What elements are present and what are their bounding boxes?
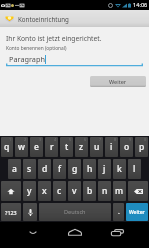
staticText: x <box>42 185 47 197</box>
staticText: t <box>65 141 69 153</box>
button[interactable]: e <box>30 137 43 157</box>
button[interactable]: Backspace <box>128 181 148 201</box>
button[interactable]: Weiter <box>90 76 146 87</box>
button[interactable]: f <box>53 159 66 179</box>
staticText: . <box>118 207 120 217</box>
staticText: 2 <box>24 137 27 142</box>
button[interactable]: Voice input <box>23 203 37 221</box>
staticText: p <box>139 141 145 153</box>
button[interactable]: Weiter <box>126 203 148 221</box>
button[interactable]: b <box>83 181 96 201</box>
staticText: e <box>34 141 39 153</box>
button[interactable]: m <box>113 181 126 201</box>
button[interactable]: r <box>45 137 58 157</box>
staticText: 5 <box>69 137 72 142</box>
button[interactable]: d <box>38 159 51 179</box>
staticText: Deutsch <box>64 208 86 216</box>
staticText: Kontoeinrichtung <box>18 15 69 23</box>
staticText: n <box>102 185 108 197</box>
button[interactable]: ?123 <box>1 203 21 221</box>
button[interactable]: q <box>1 137 13 157</box>
staticText: w <box>18 141 25 153</box>
staticText: l <box>133 163 136 175</box>
button[interactable]: n <box>98 181 111 201</box>
button[interactable]: a <box>8 159 21 179</box>
staticText: i <box>110 141 113 153</box>
staticText: z <box>79 141 84 153</box>
button[interactable]: t <box>60 137 73 157</box>
staticText: Ihr Konto ist jetzt eingerichtet. <box>6 34 102 43</box>
button[interactable]: Recents <box>96 222 138 243</box>
staticText: 3 <box>39 137 42 142</box>
staticText: o <box>124 141 130 153</box>
button[interactable]: l <box>128 159 141 179</box>
staticText: k <box>117 163 122 175</box>
staticText: v <box>72 185 77 197</box>
staticText: 0 <box>144 137 147 142</box>
staticText: d <box>42 163 48 175</box>
staticText: Paragraph <box>9 54 45 64</box>
button[interactable]: z <box>75 137 88 157</box>
staticText: m <box>115 185 124 197</box>
staticText: b <box>87 185 93 197</box>
staticText: y <box>27 185 32 197</box>
staticText: q <box>4 141 10 153</box>
button[interactable]: h <box>83 159 96 179</box>
button[interactable]: Deutsch <box>39 203 111 221</box>
button[interactable]: u <box>90 137 103 157</box>
button[interactable]: v <box>68 181 81 201</box>
staticText: 14:06 <box>133 1 148 9</box>
staticText: Weiter <box>129 209 145 216</box>
button[interactable]: j <box>98 159 111 179</box>
button[interactable]: i <box>105 137 118 157</box>
staticText: s <box>27 163 32 175</box>
staticText: a <box>12 163 17 175</box>
button[interactable]: Kontoeinrichtung <box>0 10 149 27</box>
staticText: ?123 <box>5 209 17 216</box>
staticText: f <box>58 163 62 175</box>
button[interactable]: k <box>113 159 126 179</box>
staticText: 6 <box>84 137 87 142</box>
staticText: c <box>57 185 62 197</box>
button[interactable]: w <box>15 137 28 157</box>
button[interactable]: Home <box>54 222 96 243</box>
button[interactable]: s <box>23 159 36 179</box>
staticText: h <box>87 163 93 175</box>
staticText: 7 <box>99 137 102 142</box>
button[interactable]: Hide keyboard <box>12 222 54 243</box>
button[interactable]: o <box>120 137 133 157</box>
staticText: 4 <box>54 137 57 142</box>
button[interactable]: g <box>68 159 81 179</box>
button[interactable]: p <box>135 137 148 157</box>
button[interactable]: y <box>23 181 36 201</box>
button[interactable]: x <box>38 181 51 201</box>
button[interactable]: c <box>53 181 66 201</box>
button[interactable]: . <box>113 203 124 221</box>
staticText: g <box>72 163 78 175</box>
staticText: Konto benennen (optional) <box>6 45 67 52</box>
staticText: r <box>50 141 54 153</box>
staticText: j <box>103 163 106 175</box>
staticText: u <box>94 141 100 153</box>
staticText: 1 <box>9 137 12 142</box>
staticText: 8 <box>114 137 117 142</box>
staticText: Weiter <box>109 78 127 86</box>
staticText: 9 <box>129 137 132 142</box>
button[interactable]: Shift <box>1 181 21 201</box>
